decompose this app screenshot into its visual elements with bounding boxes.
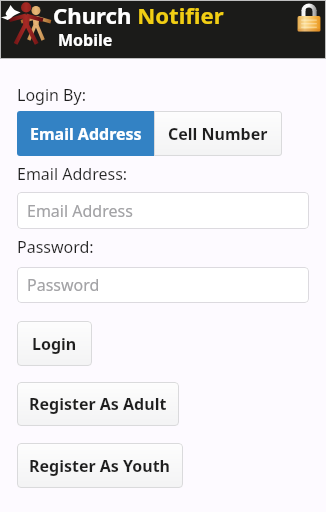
staticText: Login By: (17, 84, 86, 106)
button[interactable]: Login (17, 321, 92, 366)
staticText: Church Notifier (53, 0, 224, 30)
button[interactable]: Email Address (17, 111, 154, 156)
staticText: Register As Adult (29, 393, 167, 415)
staticText: Email Address: (17, 163, 128, 185)
button[interactable]: Register As Adult (17, 382, 179, 426)
staticText: Password: (17, 236, 94, 258)
other: Church Notifier logo (5, 3, 53, 47)
staticText: Register As Youth (29, 455, 171, 477)
staticText: Cell Number (168, 123, 268, 145)
button[interactable]: Register As Youth (17, 443, 183, 488)
button[interactable]: Password (17, 267, 309, 303)
staticText: Login (32, 333, 77, 355)
button[interactable]: Cell Number (154, 111, 282, 156)
other: Secure login (296, 2, 322, 33)
staticText: Email Address (30, 123, 142, 145)
staticText: Mobile (58, 29, 113, 51)
staticText: Password (27, 274, 100, 296)
staticText: Email Address (27, 200, 133, 222)
button[interactable]: Email Address (17, 192, 309, 229)
